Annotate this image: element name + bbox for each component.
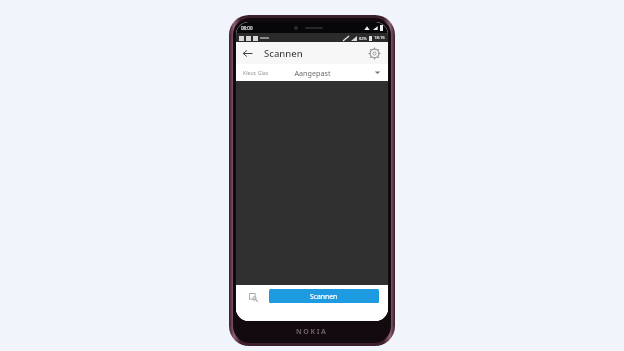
staticText: 08:00 xyxy=(241,25,253,31)
staticText: Scannen xyxy=(310,292,338,301)
button[interactable]: Scannen xyxy=(269,289,379,303)
staticText: NOKIA xyxy=(296,327,328,337)
other: Expand xyxy=(373,68,382,77)
staticText: Scannen xyxy=(264,47,303,60)
staticText: 82% xyxy=(359,36,367,41)
staticText: Kleur, Glas xyxy=(243,69,269,76)
button[interactable]: Zoom scan area xyxy=(245,289,261,305)
button[interactable]: Back xyxy=(236,42,258,64)
button[interactable]: Settings xyxy=(363,42,385,64)
staticText: Aangepast xyxy=(294,68,331,78)
button[interactable]: Kleur, Glas xyxy=(236,64,388,81)
staticText: 18:15 xyxy=(374,35,385,41)
